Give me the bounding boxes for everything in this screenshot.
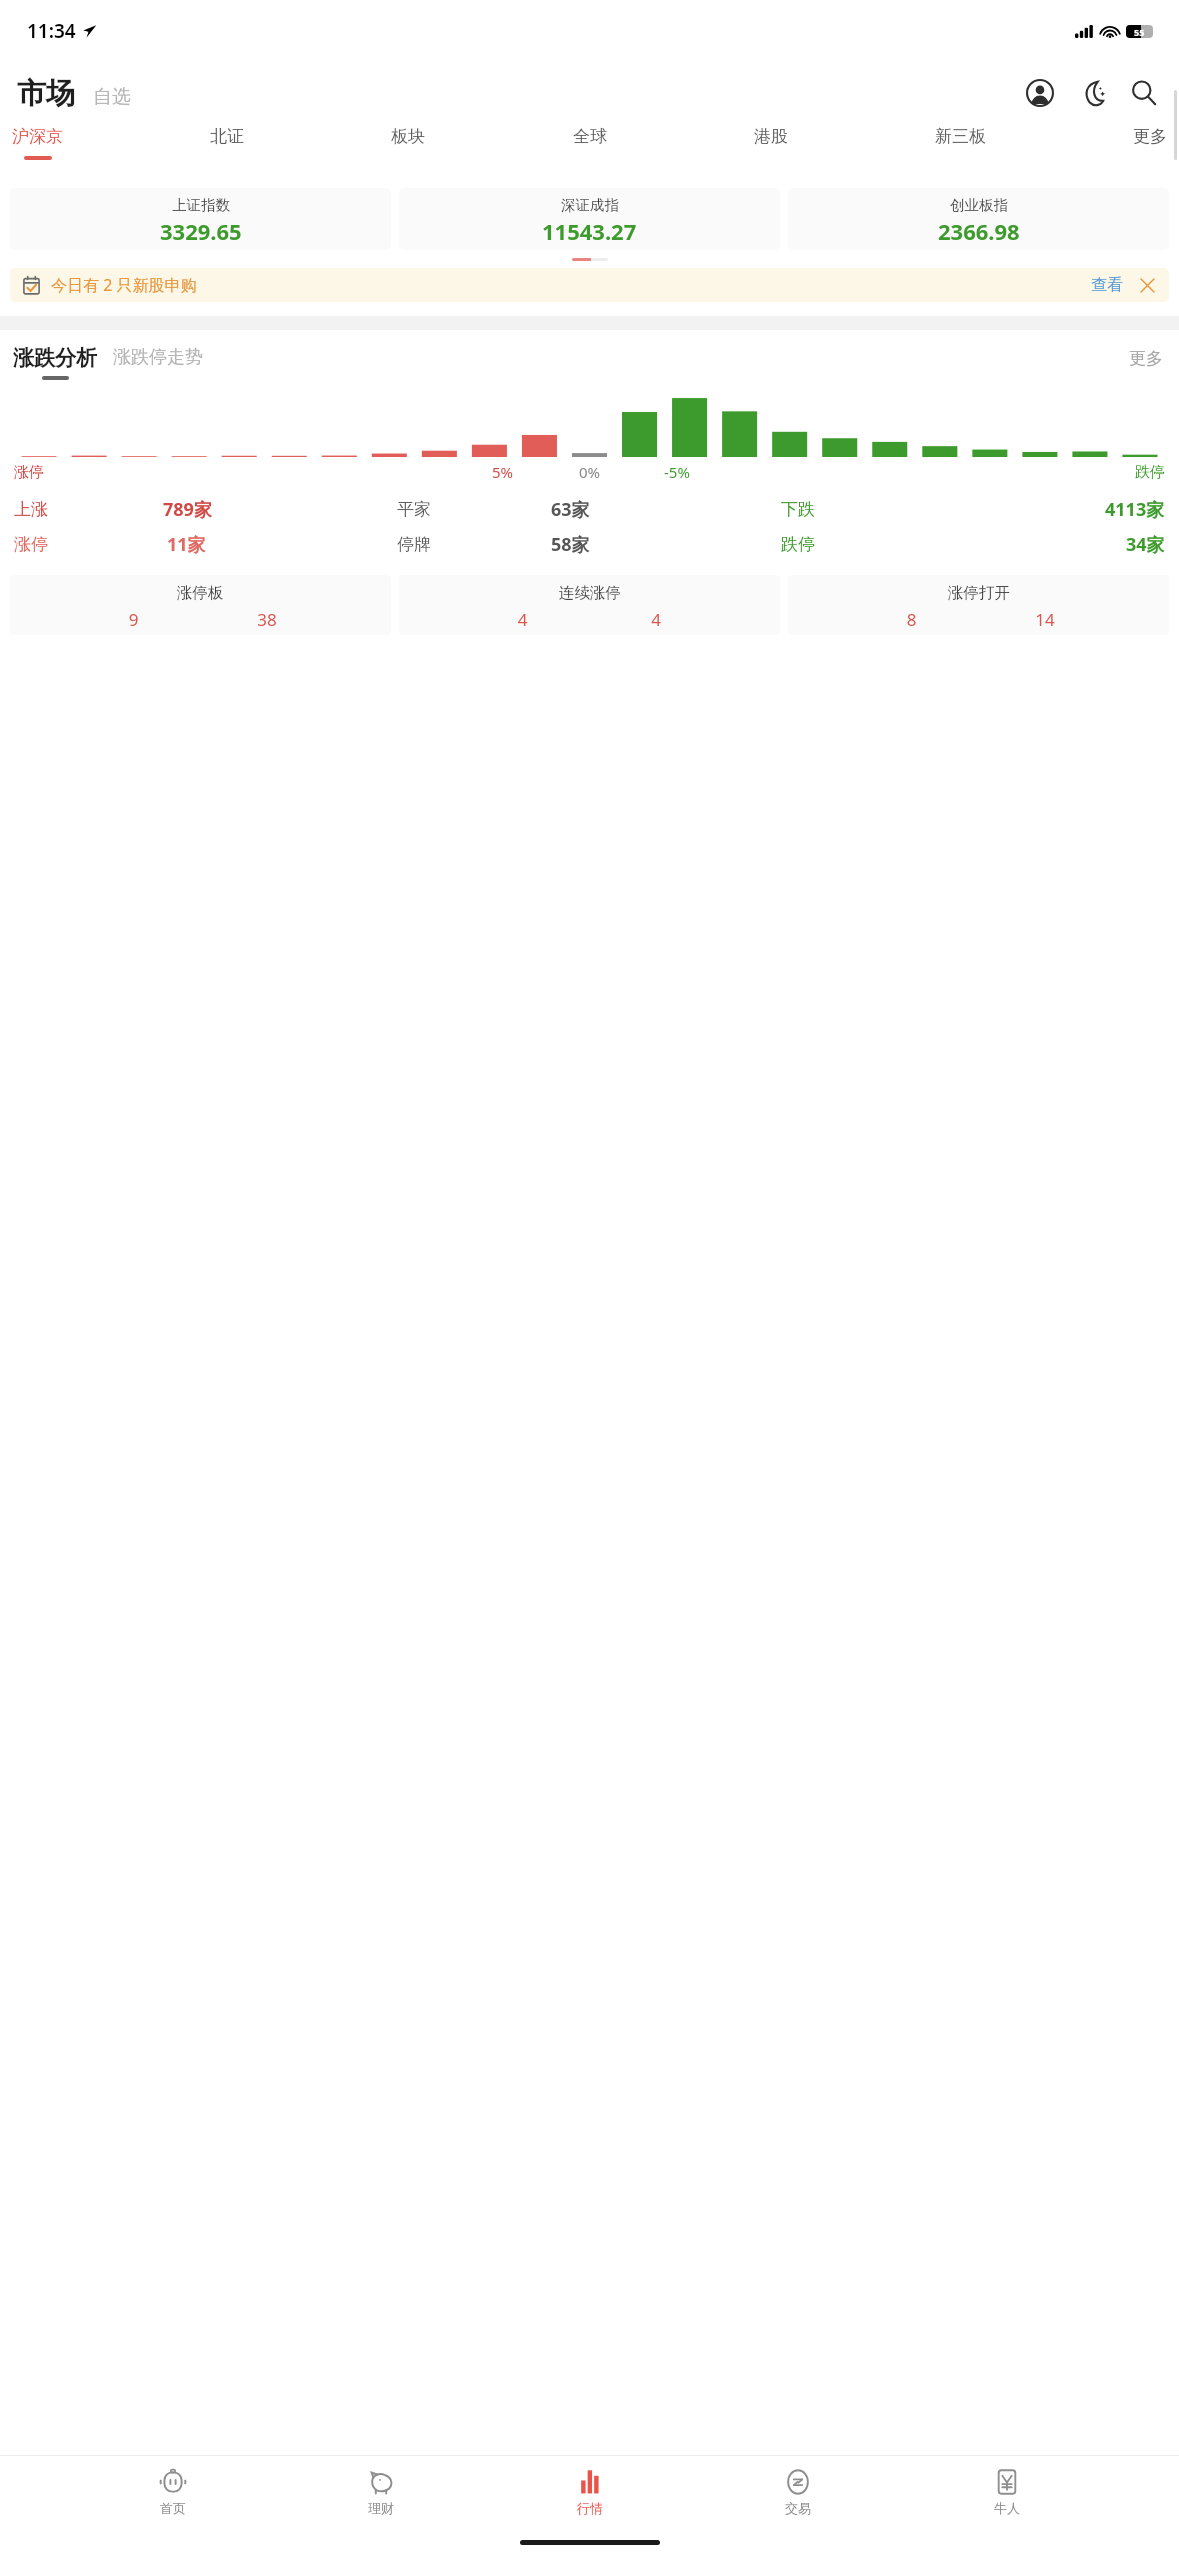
staticText: 更多 xyxy=(1133,126,1167,147)
staticText: 查看 xyxy=(1091,275,1123,295)
button[interactable]: 行情 xyxy=(554,2464,626,2520)
button[interactable]: 理财 xyxy=(345,2464,417,2520)
staticText: 0% xyxy=(579,462,601,482)
button[interactable]: 北证 xyxy=(203,124,251,158)
button[interactable]: 全球 xyxy=(566,124,614,158)
button[interactable]: 深证成指 xyxy=(399,188,780,250)
button[interactable]: 连续涨停 xyxy=(399,575,780,635)
button[interactable]: 市场 xyxy=(17,75,75,112)
staticText: 全球 xyxy=(573,126,607,147)
staticText: 更多 xyxy=(1129,348,1163,369)
staticText: 涨停打开 xyxy=(948,583,1010,603)
staticText: -5% xyxy=(664,462,690,482)
staticText: 理财 xyxy=(368,2500,394,2516)
staticText: 自选 xyxy=(93,85,131,109)
button[interactable]: 板块 xyxy=(384,124,432,158)
staticText: 深证成指 xyxy=(561,196,619,214)
staticText: 上证指数 xyxy=(172,196,230,214)
staticText: 沪深京 xyxy=(12,126,63,147)
button[interactable]: 创业板指 xyxy=(788,188,1169,250)
button[interactable]: 涨停板 xyxy=(10,575,391,635)
staticText: 市场 xyxy=(17,75,75,112)
staticText: 5% xyxy=(492,462,514,482)
button[interactable]: 上证指数 xyxy=(10,188,391,250)
staticText: 首页 xyxy=(160,2500,186,2516)
staticText: 板块 xyxy=(391,126,425,147)
staticText: 38 xyxy=(200,608,334,631)
staticText: 55 xyxy=(1134,26,1145,38)
staticText: 2366.98 xyxy=(938,216,1020,246)
staticText: 8 xyxy=(845,608,978,631)
staticText: 789家 xyxy=(163,497,212,522)
button[interactable]: 今日有 2 只新股申购 xyxy=(10,268,1169,302)
staticText: 4113家 xyxy=(1105,497,1165,522)
button[interactable]: 自选 xyxy=(93,85,131,109)
staticText: 下跌 xyxy=(781,499,815,520)
button[interactable]: 牛人 xyxy=(971,2464,1043,2520)
staticText: 创业板指 xyxy=(950,196,1008,214)
staticText: 新三板 xyxy=(935,126,986,147)
staticText: 涨停 xyxy=(14,463,44,482)
button[interactable]: 首页 xyxy=(137,2464,209,2520)
staticText: 交易 xyxy=(785,2500,811,2516)
staticText: 涨停板 xyxy=(177,583,224,603)
staticText: 11家 xyxy=(167,532,206,557)
staticText: 14 xyxy=(978,608,1112,631)
staticText: 58家 xyxy=(551,532,590,557)
staticText: 涨跌分析 xyxy=(13,345,97,371)
button[interactable]: 涨跌停走势 xyxy=(113,346,203,369)
staticText: 跌停 xyxy=(1135,463,1165,482)
staticText: 今日有 2 只新股申购 xyxy=(51,274,197,296)
staticText: 涨停 xyxy=(14,534,48,555)
staticText: 港股 xyxy=(754,126,788,147)
staticText: 63家 xyxy=(551,497,590,522)
button[interactable]: Account xyxy=(1019,72,1061,114)
button[interactable]: Night mode xyxy=(1071,72,1113,114)
button[interactable]: 新三板 xyxy=(928,124,993,158)
staticText: 连续涨停 xyxy=(559,583,621,603)
button[interactable]: 查看 xyxy=(1091,275,1123,295)
staticText: 牛人 xyxy=(994,2500,1020,2516)
button[interactable]: 港股 xyxy=(747,124,795,158)
staticText: 11:34 xyxy=(27,18,76,44)
button[interactable]: 沪深京 xyxy=(5,124,70,162)
button[interactable]: 涨跌分析 xyxy=(13,345,97,380)
button[interactable]: 交易 xyxy=(762,2464,834,2520)
staticText: 4 xyxy=(589,608,723,631)
button[interactable]: 更多 xyxy=(1129,348,1163,369)
staticText: 平家 xyxy=(397,499,431,520)
staticText: 34家 xyxy=(1126,532,1165,557)
staticText: 上涨 xyxy=(14,499,48,520)
staticText: 4 xyxy=(456,608,589,631)
staticText: 涨跌停走势 xyxy=(113,346,203,369)
staticText: 跌停 xyxy=(781,534,815,555)
staticText: 北证 xyxy=(210,126,244,147)
staticText: 停牌 xyxy=(397,534,431,555)
staticText: 9 xyxy=(67,608,200,631)
staticText: 3329.65 xyxy=(160,216,242,246)
button[interactable]: 更多 xyxy=(1126,124,1174,158)
button[interactable]: Close xyxy=(1137,275,1157,295)
button[interactable]: Search xyxy=(1123,72,1165,114)
staticText: 11543.27 xyxy=(542,216,637,246)
staticText: 行情 xyxy=(577,2500,603,2516)
button[interactable]: 涨停打开 xyxy=(788,575,1169,635)
